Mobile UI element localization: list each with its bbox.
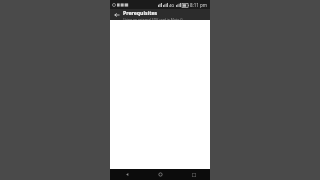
button[interactable]: Navigate up xyxy=(111,9,122,20)
button[interactable]: Back xyxy=(110,169,144,180)
staticText: 8:11 pm xyxy=(190,2,208,8)
button[interactable]: Home xyxy=(144,169,177,180)
staticText: 4G xyxy=(169,3,175,8)
button[interactable]: Prerequisites xyxy=(123,9,207,20)
button[interactable]: Recent apps xyxy=(177,169,210,180)
staticText: Using an external SDK card in Moto G xyxy=(123,17,183,20)
staticText: Prerequisites xyxy=(123,9,158,16)
